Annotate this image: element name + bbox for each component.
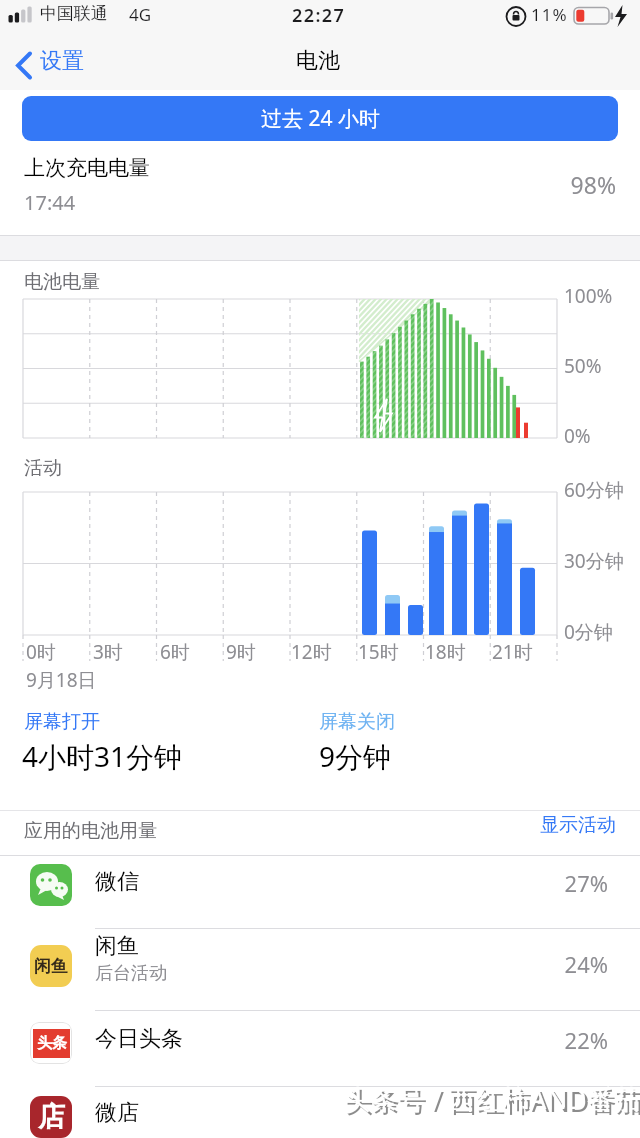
- staticText: 6时: [160, 639, 190, 665]
- staticText: 店: [38, 1100, 65, 1134]
- staticText: 0分钟: [564, 619, 613, 645]
- staticText: 电池: [296, 47, 340, 75]
- staticText: 屏幕关闭: [319, 710, 395, 734]
- staticText: 17:44: [24, 189, 76, 216]
- staticText: 30分钟: [564, 548, 624, 574]
- staticText: 21时: [492, 639, 533, 665]
- staticText: 闲鱼: [34, 956, 68, 977]
- staticText: 头条: [37, 1034, 67, 1053]
- button[interactable]: [0, 1087, 640, 1138]
- staticText: 18时: [425, 639, 466, 665]
- staticText: 22%: [564, 1025, 608, 1055]
- button[interactable]: [0, 929, 640, 1010]
- staticText: 100%: [564, 283, 613, 309]
- staticText: 头条号 / 西红柿AND番茄: [343, 1080, 640, 1117]
- staticText: 微信: [95, 868, 139, 896]
- staticText: 27%: [564, 868, 608, 898]
- staticText: 今日头条: [95, 1025, 183, 1053]
- staticText: 后台活动: [95, 962, 167, 985]
- staticText: 11%: [531, 3, 568, 26]
- button[interactable]: [0, 856, 640, 928]
- staticText: 0%: [564, 423, 591, 449]
- button[interactable]: [0, 1011, 640, 1086]
- staticText: 应用的电池用量: [24, 819, 157, 843]
- staticText: 设置: [40, 47, 84, 75]
- staticText: 12时: [291, 639, 332, 665]
- staticText: 60分钟: [564, 477, 624, 503]
- staticText: 活动: [24, 456, 62, 480]
- staticText: 显示活动: [540, 813, 616, 837]
- staticText: 闲鱼: [95, 932, 139, 960]
- staticText: 9分钟: [319, 737, 392, 775]
- staticText: 9时: [226, 639, 256, 665]
- staticText: 0时: [26, 639, 56, 665]
- staticText: 上次充电电量: [24, 155, 150, 181]
- staticText: 4G: [129, 3, 152, 26]
- staticText: 3时: [93, 639, 123, 665]
- staticText: 过去 24 小时: [261, 104, 380, 133]
- staticText: 4小时31分钟: [22, 737, 183, 775]
- staticText: 电池电量: [24, 270, 100, 294]
- staticText: 15时: [358, 639, 399, 665]
- staticText: 98%: [570, 169, 616, 200]
- staticText: 24%: [564, 949, 608, 979]
- staticText: 头条号 / 西红柿AND番茄: [346, 1083, 640, 1120]
- staticText: 22:27: [292, 3, 346, 28]
- staticText: 中国联通: [40, 3, 108, 24]
- button[interactable]: 显示活动: [436, 813, 616, 847]
- button[interactable]: [10, 46, 120, 84]
- staticText: 屏幕打开: [24, 710, 100, 734]
- staticText: 50%: [564, 353, 602, 379]
- staticText: 微店: [95, 1099, 139, 1127]
- staticText: 9月18日: [26, 667, 97, 693]
- button[interactable]: 过去 24 小时: [22, 96, 618, 141]
